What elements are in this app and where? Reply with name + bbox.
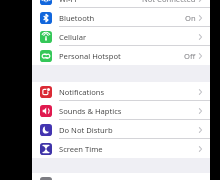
- staticText: Do Not Disturb: [59, 125, 113, 135]
- staticText: Screen Time: [59, 144, 103, 154]
- button[interactable]: General: [32, 173, 210, 180]
- staticText: Cellular: [59, 32, 87, 42]
- button[interactable]: Notifications: [32, 82, 210, 101]
- staticText: Bluetooth: [59, 13, 95, 23]
- button[interactable]: Do Not Disturb: [32, 120, 210, 139]
- button[interactable]: Cellular: [32, 27, 210, 46]
- staticText: Off: [184, 51, 196, 61]
- button[interactable]: Wi-Fi: [32, 0, 210, 8]
- button[interactable]: Bluetooth: [32, 8, 210, 27]
- staticText: Personal Hotspot: [59, 51, 121, 61]
- button[interactable]: Personal Hotspot: [32, 46, 210, 65]
- staticText: Sounds & Haptics: [59, 106, 122, 116]
- staticText: Wi-Fi: [59, 0, 77, 4]
- staticText: Notifications: [59, 87, 105, 97]
- button[interactable]: Sounds & Haptics: [32, 101, 210, 120]
- staticText: On: [185, 13, 196, 23]
- button[interactable]: Screen Time: [32, 139, 210, 158]
- staticText: Not Connected: [142, 0, 196, 4]
